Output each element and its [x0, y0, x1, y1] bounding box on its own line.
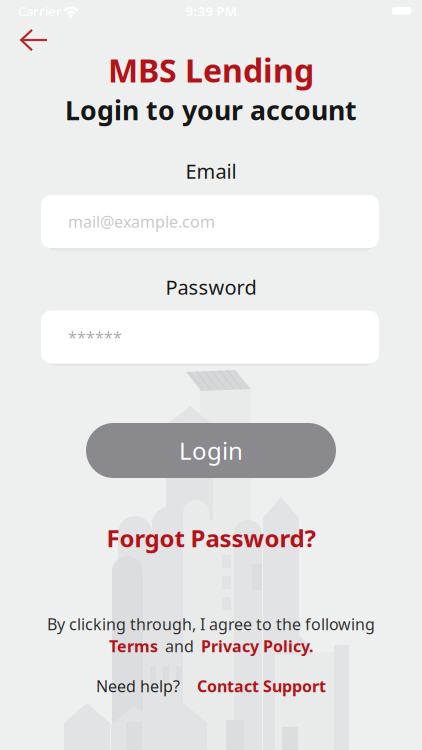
button[interactable]: ******: [41, 310, 379, 363]
button[interactable]: Contact Support: [197, 675, 326, 697]
staticText: Forgot Password?: [106, 522, 315, 554]
staticText: mail@example.com: [68, 211, 215, 232]
button[interactable]: Forgot Password?: [106, 522, 315, 554]
staticText: By clicking through, I agree to the foll…: [47, 613, 375, 635]
staticText: Contact Support: [197, 675, 326, 697]
staticText: Carrier: [18, 2, 62, 20]
staticText: 9:39 PM: [185, 2, 236, 20]
button[interactable]: Back: [20, 29, 48, 50]
staticText: Need help?: [96, 675, 180, 697]
button[interactable]: Terms: [109, 635, 158, 657]
staticText: Login to your account: [65, 92, 357, 128]
staticText: Password: [165, 274, 256, 300]
staticText: Email: [185, 158, 236, 184]
staticText: ******: [68, 326, 122, 348]
staticText: and: [165, 635, 194, 657]
button[interactable]: Privacy Policy.: [201, 635, 313, 657]
staticText: Privacy Policy.: [201, 635, 313, 657]
staticText: Login: [179, 435, 243, 466]
button[interactable]: Login: [86, 423, 336, 478]
button[interactable]: mail@example.com: [41, 195, 379, 248]
staticText: MBS Lending: [108, 49, 314, 91]
staticText: Terms: [109, 635, 158, 657]
